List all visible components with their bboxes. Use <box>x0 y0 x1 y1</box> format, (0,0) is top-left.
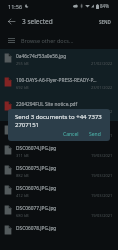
staticText: DSC06074.JPG.jpg <box>16 145 57 152</box>
staticText: 0a46c74cf53a0e56.jpg <box>16 53 67 60</box>
staticText: Cancel <box>63 131 79 138</box>
button[interactable]: 100-DAYS-A6-Flyer-PRESS-READY-P... <box>0 73 118 97</box>
staticText: DSC06078.JPG.jpg <box>16 225 57 232</box>
staticText: Browse other docs... <box>21 37 74 44</box>
staticText: SEND <box>99 19 111 25</box>
staticText: DSC06073.JPG.jpg <box>16 125 57 132</box>
staticText: DSC06077.JPG.jpg <box>16 205 57 212</box>
staticText: DSC06075.JPG.jpg <box>16 165 57 172</box>
staticText: 692 kB <box>16 85 29 90</box>
staticText: 19/03/2021 <box>91 213 113 218</box>
staticText: 882 kB <box>16 173 29 178</box>
staticText: Send 3 documents to +44 7373 2707151 <box>15 113 104 129</box>
staticText: 311 kB <box>16 153 29 158</box>
staticText: 3 selected <box>22 17 53 26</box>
staticText: 412 kB <box>16 193 29 198</box>
button[interactable]: DSC06073.JPG.jpg <box>0 121 118 141</box>
staticText: 680 kB <box>16 213 29 218</box>
button[interactable]: Back <box>4 14 19 29</box>
button[interactable]: 0a46c74cf53a0e56.jpg <box>0 49 118 73</box>
staticText: 19/03/2021 <box>91 173 113 178</box>
staticText: 23/01/2022 <box>91 85 113 90</box>
staticText: 11:56 <box>8 3 23 10</box>
staticText: 255 kB <box>16 61 29 66</box>
button[interactable]: Cancel <box>60 129 82 140</box>
button[interactable]: Browse other docs... <box>0 31 118 49</box>
staticText: Send <box>89 131 101 138</box>
staticText: 100-DAYS-A6-Flyer-PRESS-READY-P... <box>16 77 97 84</box>
button[interactable]: SEND <box>97 16 113 28</box>
staticText: 19/03/2021 <box>91 193 113 198</box>
staticText: 2264294FUL Site notice.pdf <box>16 101 78 108</box>
staticText: 19/03/2021 <box>91 153 113 158</box>
button[interactable]: DSC06077.JPG.jpg <box>0 201 118 221</box>
button[interactable]: DSC06075.JPG.jpg <box>0 161 118 181</box>
staticText: DSC06076.JPG.jpg <box>16 185 57 192</box>
staticText: 84% <box>100 3 109 9</box>
button[interactable]: DSC06074.JPG.jpg <box>0 141 118 161</box>
staticText: 23/01/2022 <box>91 109 113 114</box>
button[interactable]: Send <box>86 129 104 140</box>
staticText: 19/03/2021 <box>91 133 113 138</box>
staticText: 21/02/2022 <box>91 61 113 66</box>
button[interactable]: DSC06078.JPG.jpg <box>0 221 118 241</box>
button[interactable]: DSC06076.JPG.jpg <box>0 181 118 201</box>
button[interactable]: 2264294FUL Site notice.pdf <box>0 97 118 121</box>
